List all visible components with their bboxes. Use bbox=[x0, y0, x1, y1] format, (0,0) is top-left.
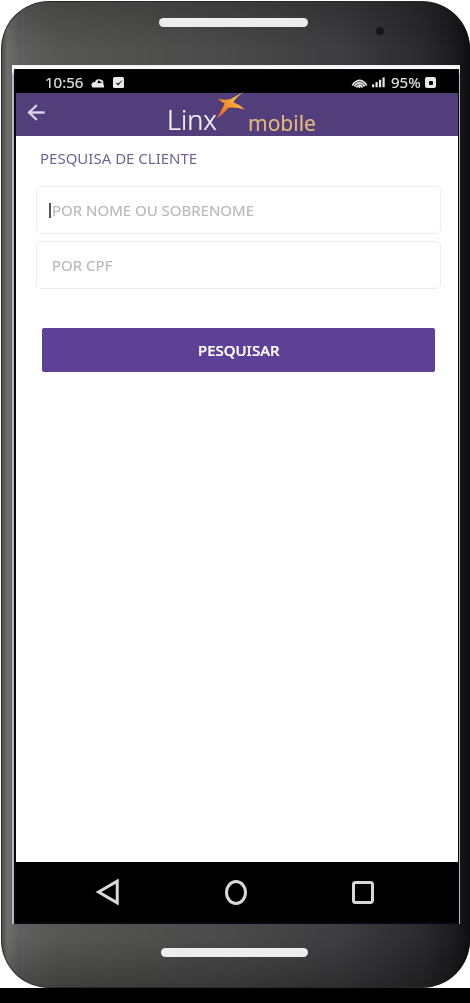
staticText: mobile bbox=[248, 109, 316, 138]
staticText: POR CPF bbox=[52, 255, 113, 275]
staticText: POR NOME OU SOBRENOME bbox=[52, 200, 254, 220]
button[interactable]: POR NOME OU SOBRENOME bbox=[36, 186, 441, 234]
button[interactable]: Back bbox=[18, 94, 54, 130]
button[interactable]: PESQUISAR bbox=[42, 328, 435, 372]
staticText: PESQUISA DE CLIENTE bbox=[40, 148, 198, 168]
staticText: Linx bbox=[167, 101, 217, 138]
button[interactable]: Back bbox=[89, 873, 127, 911]
button[interactable]: POR CPF bbox=[36, 241, 441, 289]
staticText: 10:56 bbox=[45, 72, 84, 92]
staticText: PESQUISAR bbox=[198, 340, 280, 360]
button[interactable]: Recent apps bbox=[344, 873, 382, 911]
staticText: 95% bbox=[391, 72, 421, 92]
button[interactable]: Home bbox=[217, 873, 255, 911]
